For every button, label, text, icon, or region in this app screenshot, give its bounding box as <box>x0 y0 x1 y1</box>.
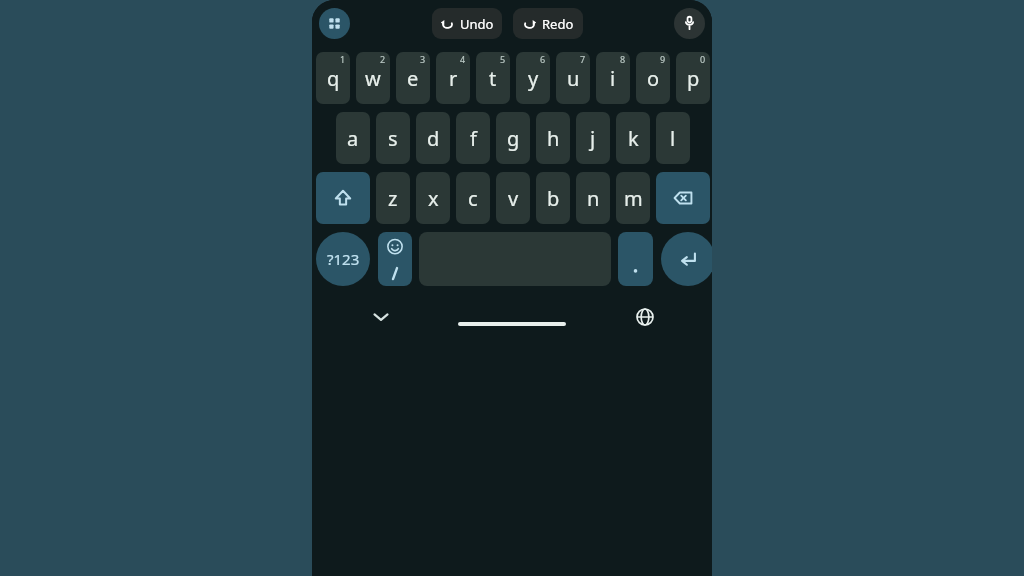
button[interactable]: l <box>656 112 690 164</box>
staticText: n <box>587 185 600 212</box>
button[interactable]: Shift <box>316 172 370 224</box>
button[interactable]: g <box>496 112 530 164</box>
staticText: 0 <box>700 53 706 65</box>
staticText: w <box>365 65 381 92</box>
staticText: k <box>628 125 639 152</box>
button[interactable]: u <box>556 52 590 104</box>
button[interactable]: ?123 <box>316 232 370 286</box>
button[interactable]: m <box>616 172 650 224</box>
button[interactable]: y <box>516 52 550 104</box>
button[interactable]: k <box>616 112 650 164</box>
staticText: r <box>449 65 458 92</box>
button[interactable]: t <box>476 52 510 104</box>
staticText: z <box>388 185 398 212</box>
staticText: c <box>468 185 478 212</box>
staticText: f <box>470 125 477 152</box>
staticText: x <box>428 185 439 212</box>
button[interactable]: c <box>456 172 490 224</box>
button[interactable]: s <box>376 112 410 164</box>
button[interactable]: w <box>356 52 390 104</box>
staticText: a <box>347 125 359 152</box>
staticText: 5 <box>500 53 506 65</box>
button[interactable]: Change language <box>628 300 662 334</box>
staticText: i <box>610 65 616 92</box>
button[interactable]: r <box>436 52 470 104</box>
button[interactable]: Undo <box>432 8 502 39</box>
staticText: b <box>547 185 560 212</box>
button[interactable]: z <box>376 172 410 224</box>
button[interactable]: d <box>416 112 450 164</box>
staticText: Redo <box>542 15 574 33</box>
staticText: v <box>508 185 519 212</box>
staticText: u <box>567 65 580 92</box>
button[interactable]: q <box>316 52 350 104</box>
button[interactable]: i <box>596 52 630 104</box>
staticText: Undo <box>460 15 494 33</box>
staticText: l <box>670 125 676 152</box>
button[interactable]: Redo <box>513 8 583 39</box>
staticText: o <box>647 65 660 92</box>
staticText: h <box>547 125 560 152</box>
button[interactable]: Voice input <box>674 8 705 39</box>
staticText: g <box>507 125 520 152</box>
button[interactable]: Enter <box>661 232 712 286</box>
staticText: 3 <box>420 53 426 65</box>
button[interactable]: v <box>496 172 530 224</box>
staticText: y <box>528 65 539 92</box>
button[interactable]: n <box>576 172 610 224</box>
staticText: q <box>327 65 340 92</box>
staticText: 8 <box>620 53 626 65</box>
button[interactable]: f <box>456 112 490 164</box>
staticText: ?123 <box>327 249 360 269</box>
button[interactable]: j <box>576 112 610 164</box>
button[interactable]: Hide keyboard <box>364 300 398 334</box>
staticText: 1 <box>340 53 346 65</box>
staticText: t <box>489 65 497 92</box>
staticText: 7 <box>580 53 586 65</box>
button[interactable]: p <box>676 52 710 104</box>
staticText: e <box>407 65 419 92</box>
button[interactable]: a <box>336 112 370 164</box>
button[interactable]: Backspace <box>656 172 710 224</box>
staticText: 9 <box>660 53 666 65</box>
button[interactable]: b <box>536 172 570 224</box>
staticText: s <box>388 125 398 152</box>
button[interactable] <box>618 232 653 286</box>
button[interactable]: h <box>536 112 570 164</box>
staticText: d <box>427 125 440 152</box>
staticText: 2 <box>380 53 386 65</box>
staticText: 6 <box>540 53 546 65</box>
staticText: j <box>590 125 596 152</box>
staticText: m <box>624 185 643 212</box>
button[interactable]: Emoji and comma <box>378 232 412 286</box>
button[interactable]: x <box>416 172 450 224</box>
button[interactable]: o <box>636 52 670 104</box>
button[interactable]: Keyboard apps <box>319 8 350 39</box>
staticText: 4 <box>460 53 466 65</box>
button[interactable]: e <box>396 52 430 104</box>
staticText: p <box>687 65 700 92</box>
